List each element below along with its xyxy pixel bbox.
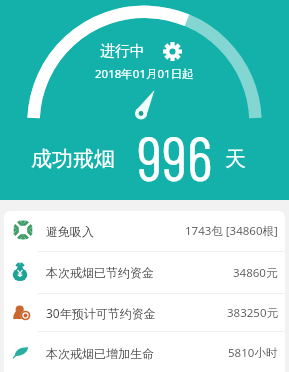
button[interactable]: 本次戒烟已增加生命 [4, 332, 285, 372]
staticText: 996 [137, 119, 213, 193]
staticText: 34860元 [233, 265, 278, 281]
staticText: 2018年01月01日起 [95, 66, 194, 82]
staticText: 避免吸入 [46, 224, 94, 239]
button[interactable]: 进行中 [100, 42, 182, 61]
button[interactable]: 30年预计可节约资金 [4, 294, 285, 331]
staticText: 383250元 [227, 305, 278, 321]
staticText: 进行中 [100, 42, 145, 61]
button[interactable]: 本次戒烟已节约资金 [4, 252, 285, 293]
button[interactable]: 避免吸入 [4, 211, 285, 251]
staticText: 1743包 [34860根] [185, 223, 278, 239]
staticText: 天 [225, 146, 246, 172]
staticText: 成功戒烟 [31, 146, 115, 172]
staticText: 30年预计可节约资金 [46, 305, 156, 321]
staticText: 本次戒烟已节约资金 [46, 265, 154, 280]
staticText: 5810小时 [228, 345, 278, 361]
staticText: 本次戒烟已增加生命 [46, 346, 154, 361]
